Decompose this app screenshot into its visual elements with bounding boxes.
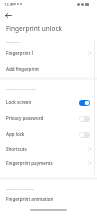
staticText: Fingerprint 1	[6, 50, 34, 56]
button[interactable]: Lock screen	[0, 97, 97, 111]
staticText: FINGERPRINT UNLOCK FOR	[6, 88, 36, 91]
staticText: Shortcuts	[6, 146, 27, 152]
button[interactable]: Add fingerprint	[0, 64, 97, 78]
staticText: App lock	[6, 131, 25, 137]
staticText: Privacy password	[6, 115, 44, 121]
button[interactable]: Fingerprint animation	[0, 194, 97, 208]
button[interactable]: Back	[3, 10, 14, 21]
button[interactable]: App lock	[0, 129, 97, 143]
button[interactable]: Shortcuts	[0, 144, 97, 158]
button[interactable]: Privacy password	[0, 113, 97, 127]
staticText: Add fingerprint	[6, 66, 40, 72]
button[interactable]: Fingerprint payments	[0, 158, 97, 172]
staticText: 13:01	[4, 2, 15, 7]
staticText: Fingerprint animation	[6, 196, 54, 202]
staticText: FINGERPRINT	[6, 41, 21, 44]
staticText: Fingerprint unlock	[6, 24, 63, 33]
staticText: FINGERPRINT ANIMATION	[6, 188, 35, 191]
button[interactable]: Fingerprint 1	[0, 48, 97, 62]
staticText: Fingerprint payments	[6, 160, 53, 166]
staticText: Lock screen	[6, 99, 32, 105]
